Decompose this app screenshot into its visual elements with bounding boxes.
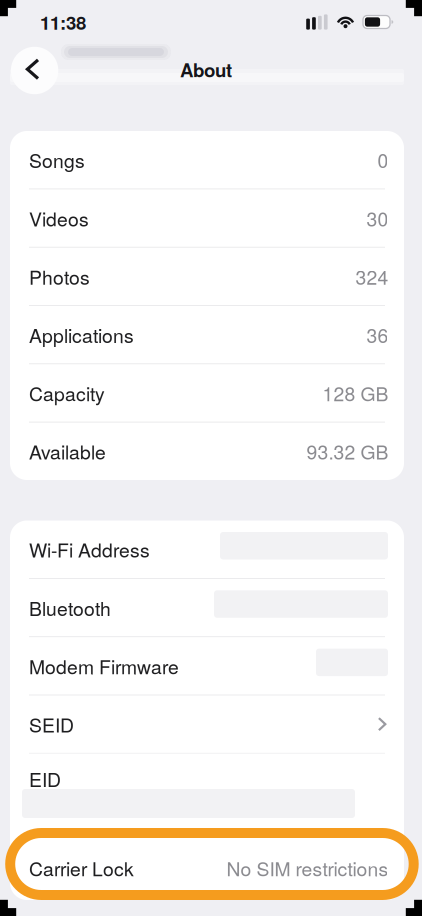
staticText: Available [29,437,106,465]
staticText: 0 [377,146,388,174]
staticText: Modem Firmware [29,652,179,680]
staticText: 30 [366,204,388,232]
button[interactable]: SEID [10,695,404,753]
staticText: Videos [29,204,89,232]
staticText: Songs [29,146,85,174]
button[interactable]: Bluetooth [10,579,404,636]
button[interactable]: Videos [10,189,404,247]
staticText: Photos [29,262,90,290]
button[interactable]: Applications [10,306,404,363]
staticText: 36 [366,321,388,348]
staticText: Bluetooth [29,594,111,621]
button[interactable]: Available [10,422,404,480]
staticText: 324 [355,262,388,290]
staticText: Capacity [29,379,105,407]
button[interactable]: Songs [10,131,404,188]
staticText: About [180,56,232,83]
button[interactable]: Back [11,47,58,94]
button[interactable]: Carrier Lock highlight [10,833,414,895]
staticText: Wi-Fi Address [29,535,150,563]
staticText: SEID [29,710,74,738]
button[interactable]: EID [10,754,404,836]
button[interactable]: Carrier Lock [10,836,404,900]
staticText: EID [29,765,61,792]
button[interactable]: Capacity [10,364,404,422]
button[interactable]: Wi-Fi Address [10,520,404,578]
staticText: 93.32 GB [306,437,388,465]
button[interactable]: Modem Firmware [10,637,404,695]
staticText: Applications [29,321,134,348]
staticText: Carrier Lock [29,854,134,882]
staticText: 11:38 [40,9,86,35]
staticText: No SIM restrictions [226,854,388,882]
staticText: 128 GB [322,379,388,407]
button[interactable]: Photos [10,248,404,305]
